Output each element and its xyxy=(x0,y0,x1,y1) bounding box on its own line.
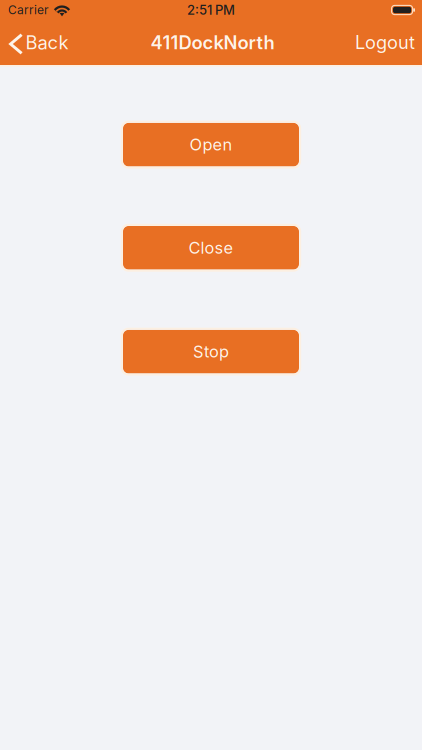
staticText: Close xyxy=(188,238,233,258)
button[interactable]: Logout xyxy=(343,20,422,65)
staticText: Stop xyxy=(193,342,229,361)
button[interactable]: Open xyxy=(120,120,301,169)
button[interactable]: Stop xyxy=(120,327,301,376)
staticText: Carrier xyxy=(8,3,49,17)
staticText: 2:51 PM xyxy=(187,2,235,18)
button[interactable]: Close xyxy=(120,223,301,272)
button[interactable]: Back xyxy=(0,20,76,65)
staticText: Open xyxy=(189,135,232,154)
staticText: 411DockNorth xyxy=(150,31,274,54)
staticText: Back xyxy=(25,31,68,54)
staticText: Logout xyxy=(355,31,415,53)
